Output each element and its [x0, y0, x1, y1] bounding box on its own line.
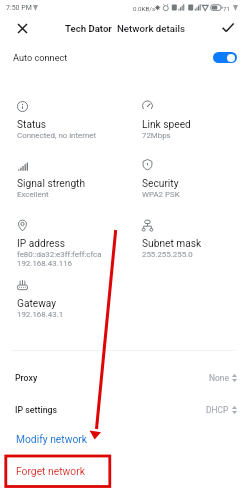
button[interactable]: Close	[11, 17, 34, 40]
staticText: 0.0KB/s	[133, 5, 156, 12]
staticText: WPA2 PSK	[142, 190, 180, 199]
button[interactable]: Forget network	[0, 459, 250, 483]
staticText: IP address	[17, 238, 66, 250]
button[interactable]: Proxy	[0, 364, 250, 391]
staticText: 192.168.43.1	[17, 310, 64, 319]
staticText: DHCP	[206, 405, 229, 415]
staticText: Security	[142, 178, 179, 190]
staticText: Excellent	[17, 190, 49, 199]
staticText: 7:50 PM	[6, 4, 32, 12]
staticText: Auto connect	[13, 52, 68, 63]
staticText: Link speed	[142, 119, 191, 131]
staticText: Connected, no internet	[17, 131, 97, 140]
button[interactable]: Auto connect	[0, 45, 250, 70]
staticText: None	[209, 373, 229, 383]
staticText: IP settings	[15, 405, 58, 415]
staticText: Gateway	[17, 298, 57, 310]
staticText: 255.255.255.0	[142, 250, 193, 259]
staticText: Modify network	[16, 433, 88, 445]
staticText: 71	[223, 5, 230, 12]
button[interactable]: IP settings	[0, 396, 250, 423]
staticText: Tech Dator	[65, 23, 112, 34]
staticText: 72Mbps	[142, 131, 171, 140]
staticText: fe80::da32:e3ff:feff:cfca	[17, 250, 102, 259]
staticText: Network details	[117, 23, 185, 34]
button[interactable]: Modify network	[0, 427, 250, 451]
staticText: Subnet mask	[142, 238, 202, 250]
button[interactable]: Save	[216, 16, 239, 39]
staticText: Proxy	[15, 373, 38, 383]
staticText: Forget network	[16, 465, 85, 477]
staticText: Status	[17, 119, 47, 131]
staticText: 192.168.43.116	[17, 259, 73, 268]
staticText: Signal strength	[17, 178, 86, 190]
